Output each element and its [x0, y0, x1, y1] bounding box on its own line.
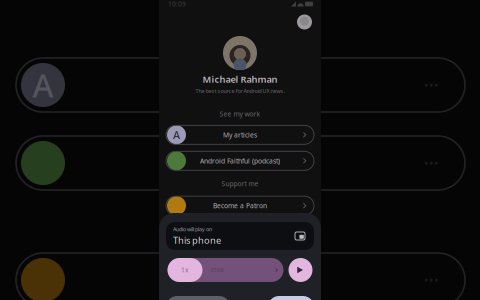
button[interactable]: Android Faithful (podcast) [166, 151, 314, 170]
staticText: See my work [219, 109, 260, 118]
staticText: Support me [175, 222, 284, 249]
staticText: Support me [221, 179, 258, 188]
button[interactable]: Play [288, 258, 312, 282]
staticText: Become a Patron [213, 201, 267, 210]
staticText: My articles [223, 130, 257, 139]
staticText: Android Faithful (podcast) [200, 156, 280, 165]
staticText: 1x [181, 266, 189, 274]
button[interactable]: Profile menu [297, 14, 312, 29]
button[interactable]: Become a Patron [166, 196, 314, 215]
staticText: A [32, 64, 53, 106]
staticText: ••• [424, 155, 439, 171]
button[interactable]: Add to queue [268, 296, 314, 300]
staticText: Audio will play on [173, 226, 212, 233]
button[interactable]: Audio will play on [166, 222, 314, 250]
staticText: This phone [173, 234, 221, 246]
staticText: 10:09 [168, 0, 186, 8]
staticText: A [173, 128, 180, 142]
button[interactable]: Rewind 30 seconds [166, 296, 230, 300]
staticText: -33:08 [208, 266, 223, 274]
staticText: The best source for Android UX news. [195, 87, 284, 94]
button[interactable]: 1x [167, 258, 202, 282]
staticText: Michael Rahman [202, 73, 277, 85]
button[interactable]: My articles [166, 125, 314, 144]
staticText: ••• [424, 272, 439, 288]
staticText: ••• [424, 77, 439, 93]
